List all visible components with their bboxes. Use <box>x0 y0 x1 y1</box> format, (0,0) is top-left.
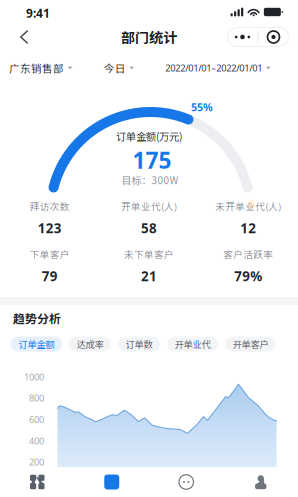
button[interactable]: 开单业代 <box>167 336 218 351</box>
button[interactable]: 订单数 <box>118 336 160 351</box>
button[interactable]: Reports <box>74 467 149 497</box>
button[interactable]: 开单客户 <box>225 336 276 351</box>
staticText: 订单金额 <box>18 337 54 351</box>
button[interactable]: Messages <box>149 467 223 497</box>
staticText: 600 <box>29 413 44 426</box>
staticText: 58 <box>141 219 157 237</box>
staticText: 55% <box>191 100 213 114</box>
button[interactable]: 2022/01/01–2022/01/01 <box>161 53 275 83</box>
staticText: 12 <box>240 219 256 237</box>
staticText: 未下单客户 <box>124 247 174 261</box>
staticText: 未开单业代(人) <box>215 199 281 213</box>
staticText: 广东销售部 <box>9 60 64 76</box>
staticText: 1000 <box>24 371 44 383</box>
staticText: 123 <box>38 219 62 237</box>
staticText: 客户活跃率 <box>223 247 273 261</box>
button[interactable]: Profile <box>223 467 298 497</box>
staticText: 部门统计 <box>121 27 177 47</box>
button[interactable]: 广东销售部 <box>5 53 76 83</box>
staticText: 开单业代(人) <box>121 199 177 213</box>
staticText: 79% <box>234 267 262 285</box>
staticText: 79 <box>42 267 58 285</box>
button[interactable]: 今日 <box>100 53 138 83</box>
staticText: 今日 <box>104 60 126 76</box>
staticText: 订单金额(万元) <box>116 128 182 143</box>
staticText: 目标：300W <box>121 173 178 187</box>
staticText: 175 <box>132 145 171 175</box>
staticText: 9:41 <box>26 5 50 21</box>
staticText: 下单客户 <box>30 247 70 261</box>
staticText: 800 <box>29 392 44 404</box>
staticText: 拜访次数 <box>30 199 70 213</box>
button[interactable]: Back <box>7 23 41 51</box>
button[interactable]: 达成率 <box>69 336 111 351</box>
button[interactable]: Workbench <box>0 467 74 497</box>
staticText: 400 <box>29 435 44 447</box>
staticText: 订单数 <box>125 337 152 351</box>
staticText: 开单业代 <box>174 337 210 351</box>
button[interactable]: 订单金额 <box>11 336 62 351</box>
staticText: 开单客户 <box>232 337 268 351</box>
staticText: 200 <box>29 456 44 468</box>
staticText: 达成率 <box>76 337 103 351</box>
staticText: 21 <box>141 267 157 285</box>
button[interactable]: Close mini program <box>258 27 288 46</box>
staticText: 2022/01/01–2022/01/01 <box>165 62 262 74</box>
staticText: 趋势分析 <box>13 309 61 327</box>
button[interactable]: More options <box>227 27 257 46</box>
